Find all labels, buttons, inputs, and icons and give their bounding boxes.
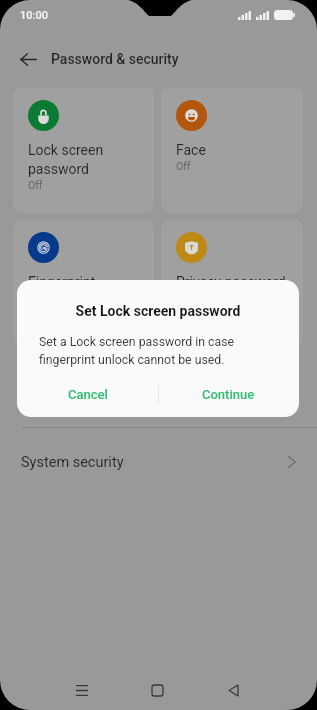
button[interactable]: Cancel bbox=[17, 377, 158, 411]
staticText: Password & security bbox=[51, 51, 179, 67]
staticText: Off bbox=[28, 179, 43, 191]
staticText: Lock screen password bbox=[28, 142, 104, 177]
button[interactable]: Device & privacy bbox=[0, 364, 317, 427]
button[interactable]: Face bbox=[161, 88, 303, 213]
button[interactable]: Fingerprint bbox=[13, 220, 154, 345]
staticText: Privacy password bbox=[176, 274, 286, 290]
button[interactable]: Back bbox=[210, 671, 257, 710]
staticText: Device & privacy bbox=[21, 387, 126, 404]
button[interactable]: Lock screen password bbox=[13, 88, 154, 213]
staticText: Off bbox=[176, 160, 191, 172]
button[interactable]: Recent apps bbox=[58, 671, 105, 710]
staticText: Face bbox=[176, 142, 206, 158]
button[interactable]: System security bbox=[0, 427, 317, 497]
staticText: Set a Lock screen password in case finge… bbox=[39, 335, 278, 367]
staticText: Fingerprint bbox=[28, 274, 96, 290]
button[interactable]: Privacy password bbox=[161, 220, 303, 345]
staticText: Continue bbox=[202, 387, 255, 402]
button[interactable]: Home bbox=[134, 671, 181, 710]
button[interactable]: Back bbox=[13, 44, 43, 74]
staticText: 10:00 bbox=[20, 9, 48, 22]
staticText: Set Lock screen password bbox=[17, 303, 299, 319]
button[interactable]: Continue bbox=[158, 377, 299, 411]
staticText: Cancel bbox=[68, 387, 108, 402]
staticText: System security bbox=[21, 454, 124, 471]
